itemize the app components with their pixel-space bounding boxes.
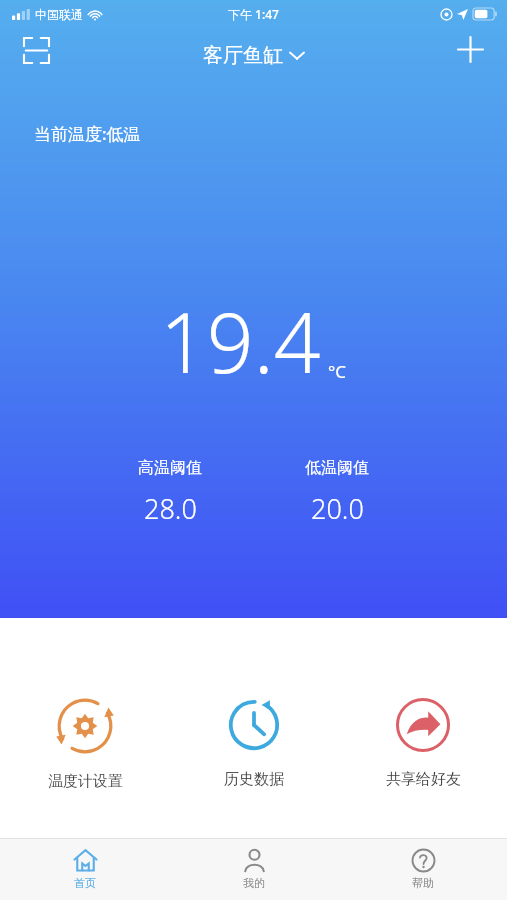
button[interactable]: 历史数据 — [184, 690, 324, 795]
button[interactable]: 共享给好友 — [353, 690, 493, 795]
staticText: 当前温度:低温 — [34, 122, 141, 145]
button[interactable]: Add device — [449, 28, 491, 70]
staticText: °C — [328, 360, 347, 383]
staticText: 下午 1:47 — [228, 6, 279, 22]
button[interactable]: 我的 — [189, 842, 319, 896]
staticText: 我的 — [243, 876, 265, 890]
button[interactable]: Scan — [16, 30, 56, 70]
staticText: 帮助 — [412, 876, 434, 890]
staticText: 历史数据 — [224, 770, 284, 789]
staticText: 高温阈值 — [138, 458, 202, 478]
staticText: 20.0 — [311, 490, 364, 527]
staticText: 中国联通 — [35, 7, 83, 22]
staticText: 温度计设置 — [48, 772, 123, 791]
button[interactable]: 客厅鱼缸 — [203, 43, 304, 68]
staticText: 共享给好友 — [386, 770, 461, 789]
staticText: 低温阈值 — [305, 458, 369, 478]
staticText: 19.4 — [160, 285, 321, 397]
button[interactable]: 首页 — [20, 842, 150, 896]
staticText: 28.0 — [144, 490, 197, 527]
staticText: 首页 — [74, 876, 96, 890]
staticText: 客厅鱼缸 — [203, 43, 283, 68]
button[interactable]: 温度计设置 — [15, 690, 155, 797]
button[interactable]: 帮助 — [358, 842, 488, 896]
